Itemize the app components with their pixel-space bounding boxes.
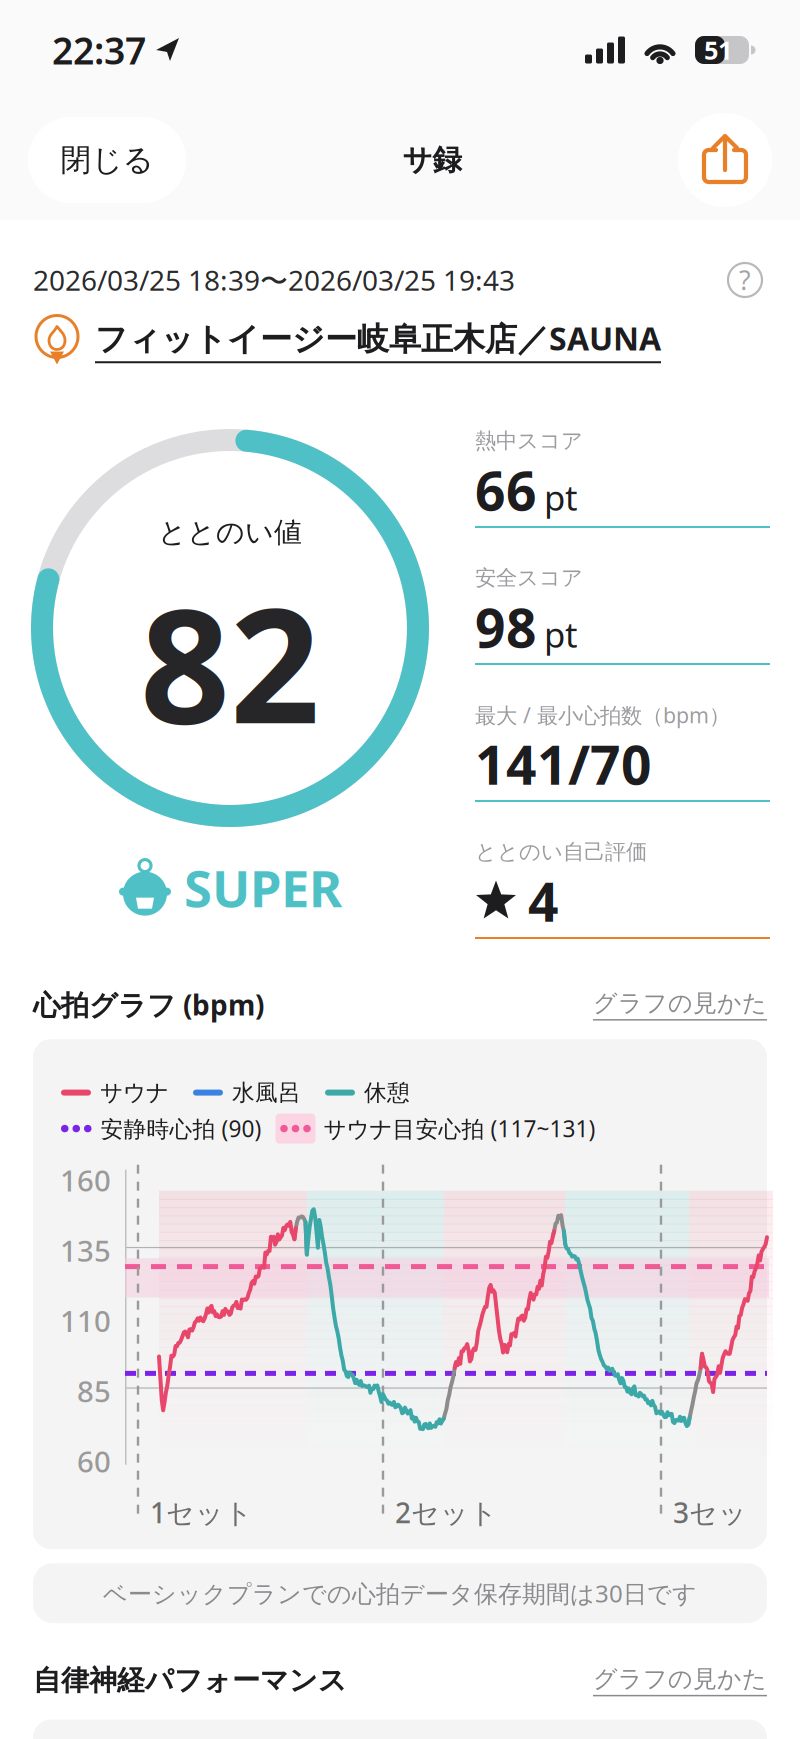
staticText: ? — [739, 262, 751, 298]
staticText: 水風呂 — [232, 1079, 301, 1106]
staticText: グラフの見かた — [593, 1664, 767, 1694]
staticText: 休憩 — [364, 1079, 410, 1106]
staticText: 3セッ — [673, 1494, 747, 1531]
staticText: ベーシックプランでの心拍データ保存期間は30日です — [103, 1577, 697, 1609]
staticText: 135 — [60, 1231, 111, 1270]
staticText: 閉じる — [60, 141, 153, 179]
staticText: 最大 / 最小心拍数（bpm） — [475, 701, 730, 729]
staticText: 66 — [475, 455, 537, 525]
staticText: 自律神経パフォーマンス — [33, 1663, 347, 1698]
staticText: 2026/03/25 18:39〜2026/03/25 19:43 — [33, 261, 515, 299]
staticText: ととのい自己評価 — [475, 839, 647, 865]
staticText: サウナ目安心拍 (117~131) — [323, 1113, 595, 1144]
staticText: 98 — [475, 592, 537, 662]
staticText: 160 — [60, 1161, 111, 1200]
staticText: pt — [544, 611, 578, 657]
staticText: pt — [544, 474, 578, 520]
staticText: 110 — [60, 1301, 111, 1340]
staticText: SUPER — [184, 854, 342, 921]
staticText: 2セット — [395, 1494, 498, 1531]
staticText: サウナ — [100, 1079, 169, 1106]
staticText: サ録 — [402, 142, 461, 178]
staticText: 51 — [704, 33, 732, 67]
staticText: 心拍グラフ (bpm) — [33, 986, 264, 1023]
staticText: フィットイージー岐阜正木店／SAUNA — [95, 317, 661, 359]
staticText: 141/70 — [475, 729, 652, 799]
button[interactable]: 閉じる — [28, 117, 186, 203]
staticText: 85 — [77, 1371, 111, 1410]
staticText: グラフの見かた — [593, 989, 767, 1018]
button[interactable]: グラフの見かた — [593, 989, 767, 1021]
staticText: 22:37 — [52, 25, 146, 75]
staticText: 安静時心拍 (90) — [100, 1113, 261, 1144]
button[interactable]: 共有 — [678, 113, 772, 207]
staticText: 60 — [77, 1442, 111, 1481]
button[interactable]: ヘルプ — [723, 258, 767, 302]
staticText: 4 — [528, 866, 559, 936]
staticText: ととのい値 — [158, 515, 302, 550]
staticText: 1セット — [150, 1494, 253, 1531]
button[interactable]: フィットイージー岐阜正木店／SAUNA — [33, 314, 767, 366]
button[interactable]: グラフの見かた — [593, 1664, 767, 1696]
staticText: 熱中スコア — [475, 428, 583, 454]
staticText: 82 — [140, 558, 320, 767]
staticText: 安全スコア — [475, 565, 583, 591]
